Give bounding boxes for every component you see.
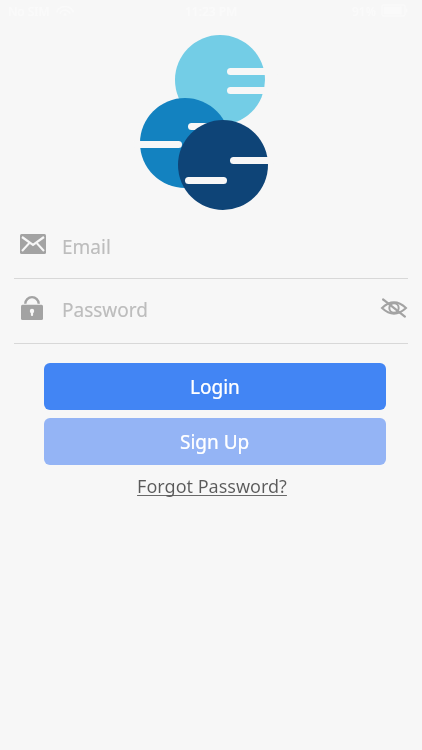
button[interactable]: Forgot Password?: [124, 472, 300, 500]
staticText: Sign Up: [180, 429, 250, 455]
button[interactable]: Email: [0, 224, 422, 279]
staticText: Password: [62, 297, 148, 323]
staticText: Forgot Password?: [137, 474, 287, 499]
button[interactable]: Sign Up: [44, 418, 386, 465]
staticText: Login: [190, 374, 240, 400]
button[interactable]: Show password: [374, 288, 414, 328]
button[interactable]: Login: [44, 363, 386, 410]
staticText: Email: [62, 234, 111, 260]
button[interactable]: [0, 286, 422, 342]
